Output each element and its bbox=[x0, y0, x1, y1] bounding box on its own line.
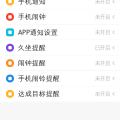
staticText: 未开启 bbox=[95, 0, 110, 5]
staticText: 未开启 bbox=[95, 29, 110, 36]
staticText: 达成目标提醒 bbox=[18, 90, 60, 98]
staticText: 未开启 bbox=[95, 60, 110, 66]
button[interactable]: 手机通知 bbox=[0, 0, 120, 9]
button[interactable]: 手机闹铃提醒 bbox=[0, 71, 120, 86]
button[interactable]: 闹钟提醒 bbox=[0, 56, 120, 71]
staticText: 未开启 bbox=[95, 14, 110, 20]
staticText: 手机通知 bbox=[18, 0, 46, 6]
staticText: 手机闹钟 bbox=[18, 13, 46, 21]
staticText: 久坐提醒 bbox=[18, 44, 46, 52]
button[interactable]: 达成目标提醒 bbox=[0, 86, 120, 101]
button[interactable]: 手机闹钟 bbox=[0, 9, 120, 25]
button[interactable]: APP通知设置 bbox=[0, 25, 120, 40]
button[interactable]: 久坐提醒 bbox=[0, 40, 120, 56]
staticText: 未开启 bbox=[95, 91, 110, 97]
staticText: 未开启 bbox=[95, 75, 110, 82]
staticText: 闹钟提醒 bbox=[18, 59, 46, 67]
staticText: 手机闹铃提醒 bbox=[18, 74, 60, 83]
staticText: APP通知设置 bbox=[18, 28, 58, 37]
staticText: 已开启 bbox=[95, 44, 110, 51]
